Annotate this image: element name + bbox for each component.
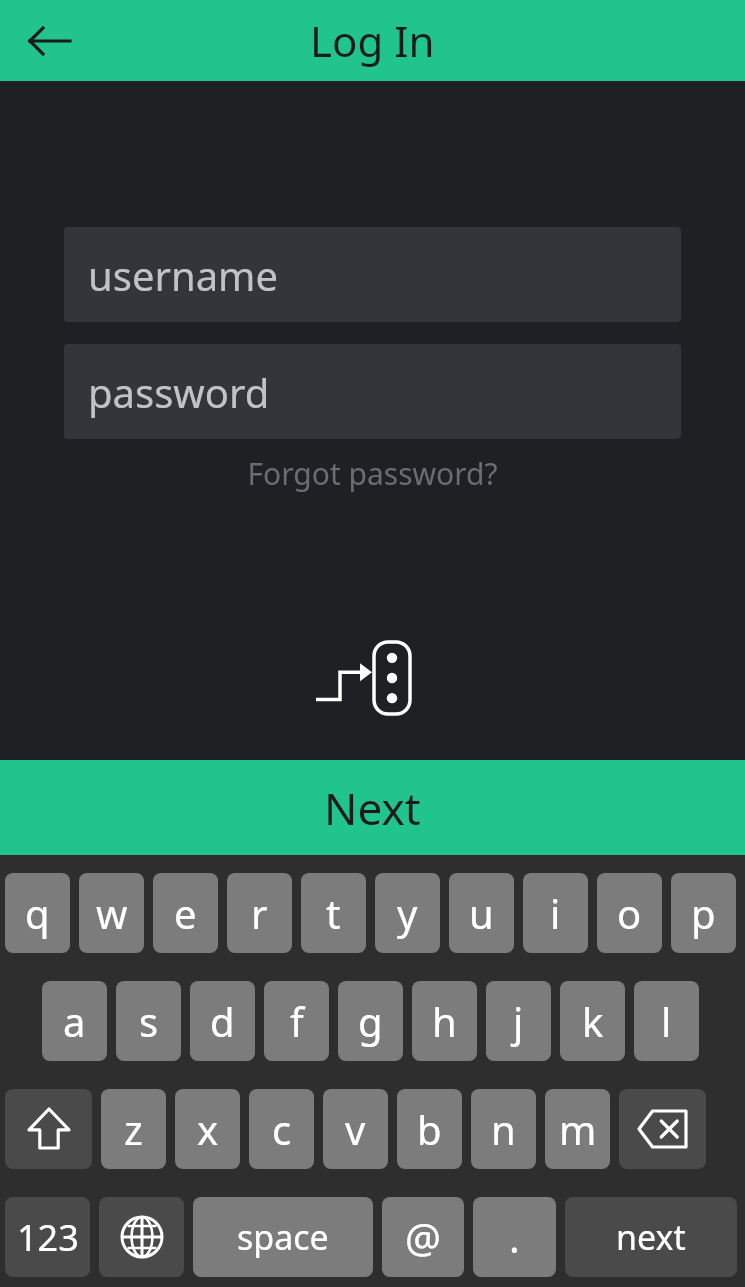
staticText: next [616,1214,686,1260]
staticText: space [237,1214,329,1260]
staticText: b [417,1102,442,1156]
staticText: z [124,1102,143,1156]
button[interactable]: c [249,1089,314,1169]
button[interactable]: next [565,1197,737,1277]
button[interactable]: d [190,981,255,1061]
staticText: o [617,886,642,940]
button[interactable]: g [338,981,403,1061]
staticText: f [290,994,304,1048]
button[interactable]: space [193,1197,373,1277]
button[interactable]: s [116,981,181,1061]
button[interactable]: n [471,1089,536,1169]
staticText: username [88,248,279,302]
button[interactable]: . [473,1197,556,1277]
button[interactable]: w [79,873,144,953]
button[interactable]: r [227,873,292,953]
staticText: g [358,994,383,1048]
staticText: i [550,886,561,940]
button[interactable]: j [486,981,551,1061]
button[interactable]: i [523,873,588,953]
button[interactable]: h [412,981,477,1061]
staticText: Next [324,778,421,838]
staticText: t [326,886,341,940]
staticText: x [197,1102,219,1156]
button[interactable]: Backspace [619,1089,706,1169]
button[interactable]: a [42,981,107,1061]
button[interactable]: e [153,873,218,953]
button[interactable]: y [375,873,440,953]
button[interactable]: Shift [5,1089,92,1169]
button[interactable]: m [545,1089,610,1169]
staticText: n [491,1102,516,1156]
staticText: y [397,886,418,940]
button[interactable]: z [101,1089,166,1169]
button[interactable]: o [597,873,662,953]
staticText: 123 [17,1213,79,1262]
staticText: k [582,994,604,1048]
button[interactable]: p [671,873,736,953]
staticText: u [469,886,494,940]
button[interactable]: Forgot password? [0,447,745,499]
button[interactable]: @ [382,1197,464,1277]
staticText: password [88,365,270,419]
button[interactable]: x [175,1089,240,1169]
button[interactable]: password [64,344,681,439]
button[interactable]: Back [18,9,82,73]
button[interactable]: t [301,873,366,953]
button[interactable]: k [560,981,625,1061]
staticText: @ [405,1210,441,1264]
button[interactable]: Change keyboard language [99,1197,184,1277]
staticText: e [174,886,197,940]
button[interactable]: u [449,873,514,953]
button[interactable]: username [64,227,681,322]
staticText: q [25,886,50,940]
staticText: Log In [310,12,435,69]
button[interactable]: v [323,1089,388,1169]
staticText: s [139,994,159,1048]
staticText: a [63,994,86,1048]
staticText: c [272,1102,292,1156]
button[interactable]: Next [0,760,745,855]
staticText: . [509,1210,520,1264]
staticText: j [513,994,524,1048]
staticText: v [345,1102,366,1156]
other: More options [318,633,428,723]
button[interactable]: q [5,873,70,953]
staticText: w [96,886,128,940]
button[interactable]: 123 [5,1197,90,1277]
staticText: p [691,886,716,940]
staticText: h [432,994,457,1048]
staticText: Forgot password? [247,453,498,494]
button[interactable]: f [264,981,329,1061]
button[interactable]: b [397,1089,462,1169]
button[interactable]: l [634,981,699,1061]
staticText: l [661,994,672,1048]
staticText: r [251,886,268,940]
staticText: d [210,994,235,1048]
staticText: m [559,1102,597,1156]
